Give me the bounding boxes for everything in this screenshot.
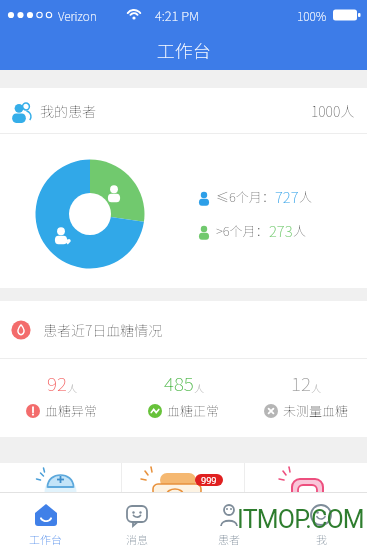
button[interactable]: 485 bbox=[123, 359, 245, 420]
staticText: 血糖正常 bbox=[167, 401, 220, 420]
staticText: 工作台 bbox=[29, 531, 62, 547]
button[interactable]: 工作台 bbox=[0, 493, 91, 550]
staticText: 485 bbox=[164, 369, 194, 397]
staticText: 999 bbox=[201, 474, 217, 486]
staticText: 100% bbox=[297, 7, 327, 24]
button[interactable] bbox=[245, 463, 367, 492]
staticText: ITMOP.COM bbox=[237, 505, 364, 534]
staticText: 1000人 bbox=[311, 101, 355, 121]
button[interactable] bbox=[0, 463, 121, 492]
staticText: 4:21 PM bbox=[155, 6, 199, 25]
staticText: 人 bbox=[299, 187, 313, 206]
button[interactable]: 我 bbox=[275, 493, 367, 550]
staticText: Verizon bbox=[58, 7, 97, 24]
staticText: 12 bbox=[291, 369, 311, 397]
staticText: 人 bbox=[293, 221, 307, 240]
staticText: 人 bbox=[311, 380, 321, 394]
button[interactable]: 999 bbox=[122, 463, 244, 492]
staticText: 患者近7日血糖情况 bbox=[43, 320, 163, 340]
staticText: 工作台 bbox=[157, 37, 211, 63]
staticText: 血糖异常 bbox=[45, 401, 98, 420]
button[interactable]: 患者 bbox=[183, 493, 275, 550]
button[interactable]: 92 bbox=[0, 359, 123, 420]
staticText: ≤6个月： bbox=[216, 187, 275, 206]
button[interactable]: 我的患者 bbox=[0, 88, 367, 133]
staticText: 人 bbox=[67, 380, 77, 394]
staticText: 273 bbox=[269, 220, 293, 241]
staticText: 92 bbox=[47, 369, 67, 397]
staticText: 患者 bbox=[218, 531, 240, 547]
staticText: 727 bbox=[275, 186, 299, 207]
staticText: 我 bbox=[316, 531, 327, 547]
staticText: 我的患者 bbox=[40, 101, 96, 121]
staticText: 消息 bbox=[126, 531, 148, 547]
staticText: 未测量血糖 bbox=[283, 401, 349, 420]
staticText: >6个月： bbox=[216, 221, 269, 240]
staticText: 人 bbox=[194, 380, 204, 394]
button[interactable]: 12 bbox=[245, 359, 367, 420]
button[interactable]: 消息 bbox=[91, 493, 183, 550]
